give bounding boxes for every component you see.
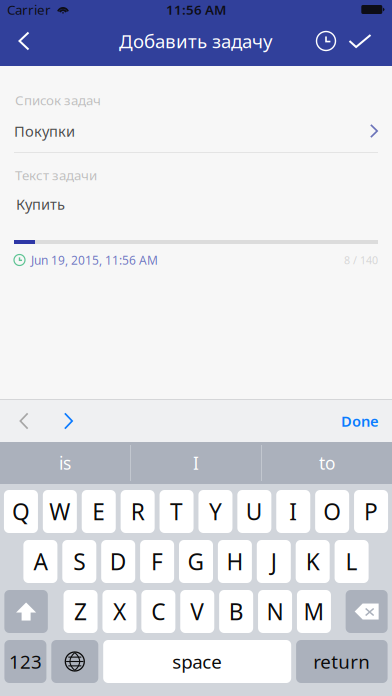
staticText: Список задач [15,91,101,109]
button[interactable]: X [102,590,136,633]
button[interactable]: Done [341,400,392,442]
staticText: B [229,596,244,626]
staticText: W [49,496,70,526]
button[interactable]: G [179,540,213,583]
button[interactable]: I [131,442,261,484]
button[interactable]: Q [4,490,38,533]
button[interactable]: F [140,540,174,583]
staticText: R [131,496,145,526]
staticText: Z [74,596,87,626]
staticText: 11:56 AM [166,1,226,18]
button[interactable]: to [262,442,392,484]
staticText: I [193,451,199,474]
button[interactable]: Next keyboard [51,640,98,683]
staticText: Done [341,411,379,431]
staticText: return [313,649,370,674]
button[interactable]: A [23,540,57,583]
staticText: Добавить задачу [119,29,273,53]
staticText: J [271,546,277,576]
staticText: Текст задачи [15,166,97,184]
button[interactable]: R [121,490,155,533]
button[interactable]: M [297,590,331,633]
button[interactable]: Set due date [312,25,340,57]
staticText: Jun 19, 2015, 11:56 AM [31,252,158,268]
staticText: E [92,496,105,526]
staticText: 123 [9,649,42,674]
staticText: K [306,546,320,576]
button[interactable]: space [103,640,291,683]
button[interactable]: is [0,442,130,484]
button[interactable]: D [101,540,135,583]
button[interactable]: W [43,490,77,533]
staticText: C [151,596,165,626]
button[interactable]: P [354,490,388,533]
button[interactable]: Delete [346,590,388,633]
staticText: space [172,649,222,674]
staticText: A [33,546,47,576]
button[interactable]: N [258,590,292,633]
staticText: 8 / 140 [344,253,378,267]
staticText: D [110,546,127,576]
button[interactable]: Покупки [14,108,378,143]
staticText: Y [209,496,222,526]
button[interactable]: C [141,590,175,633]
staticText: O [323,496,341,526]
button[interactable]: return [296,640,388,683]
button[interactable]: I [276,490,310,533]
button[interactable]: U [237,490,271,533]
button[interactable]: J [257,540,291,583]
button[interactable]: Next field [48,400,89,442]
staticText: U [246,496,263,526]
button[interactable]: Z [64,590,98,633]
staticText: M [303,596,324,626]
staticText: V [190,596,204,626]
button[interactable]: Previous field [0,400,48,442]
button[interactable]: Back [0,25,48,57]
staticText: F [151,546,163,576]
staticText: Покупки [14,121,75,141]
button[interactable]: Shift [4,590,48,633]
staticText: S [73,546,85,576]
staticText: G [187,546,204,576]
button[interactable]: V [180,590,214,633]
staticText: L [346,546,358,576]
staticText: I [289,496,297,526]
staticText: is [59,451,71,474]
button[interactable]: O [315,490,349,533]
staticText: Q [12,496,30,526]
button[interactable]: B [219,590,253,633]
button[interactable]: Save task [340,25,392,57]
staticText: X [113,596,126,626]
button[interactable]: T [159,490,193,533]
button[interactable]: 123 [4,640,46,683]
staticText: Carrier [7,1,51,18]
staticText: Купить [16,194,65,214]
button[interactable]: E [82,490,116,533]
button[interactable]: K [296,540,330,583]
button[interactable]: H [218,540,252,583]
staticText: H [226,546,243,576]
staticText: T [170,496,183,526]
staticText: to [319,451,335,474]
button[interactable]: Y [198,490,232,533]
staticText: P [364,496,378,526]
button[interactable]: S [62,540,96,583]
staticText: N [267,596,284,626]
button[interactable]: L [335,540,369,583]
